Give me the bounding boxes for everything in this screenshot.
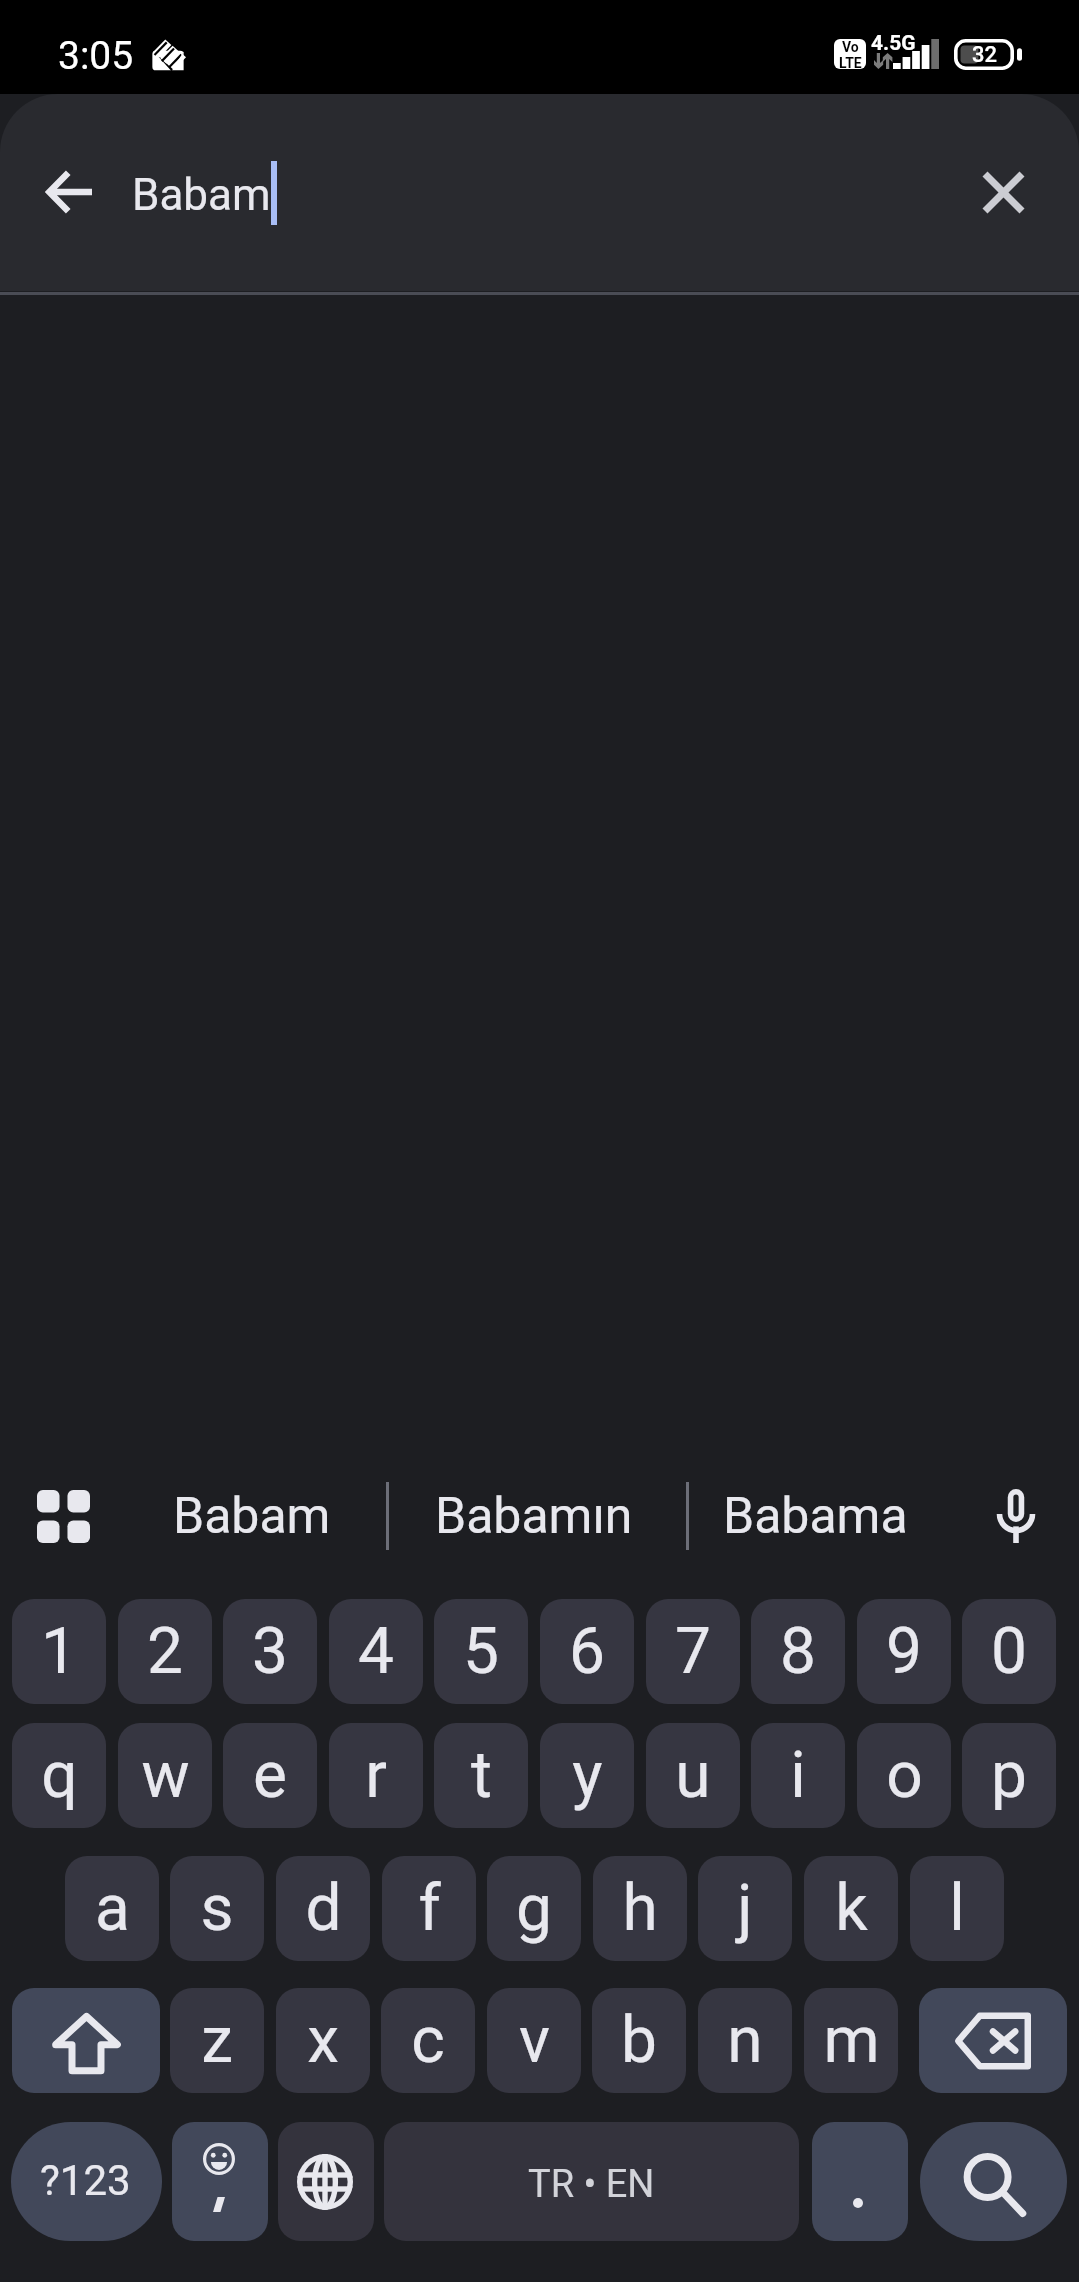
staticText: h [622, 1871, 658, 1946]
button[interactable]: Period [812, 2122, 908, 2241]
button[interactable]: v [487, 1988, 581, 2093]
button[interactable]: z [170, 1988, 264, 2093]
staticText: s [200, 1871, 234, 1946]
staticText: 4 [358, 1614, 394, 1689]
staticText: 1 [41, 1614, 77, 1689]
button[interactable]: Emoji [172, 2122, 268, 2241]
button[interactable]: r [329, 1723, 423, 1828]
staticText: LTE [839, 55, 862, 69]
staticText: 2 [147, 1614, 183, 1689]
button[interactable]: Search [920, 2122, 1067, 2241]
staticText: ?123 [40, 2156, 131, 2205]
button[interactable]: p [962, 1723, 1056, 1828]
staticText: z [201, 2003, 233, 2078]
staticText: 3 [252, 1614, 288, 1689]
staticText: y [572, 1738, 603, 1813]
staticText: a [95, 1871, 130, 1946]
staticText: u [675, 1738, 711, 1813]
staticText: Vo [842, 39, 859, 55]
button[interactable]: m [804, 1988, 898, 2093]
button[interactable]: 2 [118, 1599, 212, 1704]
staticText: Babamın [435, 1487, 633, 1546]
button[interactable]: y [540, 1723, 634, 1828]
staticText: r [365, 1738, 387, 1813]
button[interactable]: 6 [540, 1599, 634, 1704]
staticText: f [418, 1871, 441, 1946]
button[interactable]: w [118, 1723, 212, 1828]
staticText: 8 [780, 1614, 816, 1689]
button[interactable]: Change keyboard language [278, 2122, 374, 2241]
button[interactable]: d [276, 1856, 370, 1961]
staticText: j [737, 1871, 753, 1946]
staticText: k [835, 1871, 868, 1946]
staticText: w [141, 1738, 190, 1813]
button[interactable]: Babama [686, 1452, 944, 1580]
button[interactable]: f [382, 1856, 476, 1961]
button[interactable]: g [487, 1856, 581, 1961]
button[interactable]: Shift [12, 1988, 160, 2093]
button[interactable]: s [170, 1856, 264, 1961]
button[interactable]: 1 [12, 1599, 106, 1704]
button[interactable]: n [698, 1988, 792, 2093]
button[interactable]: j [698, 1856, 792, 1961]
staticText: 5 [463, 1614, 499, 1689]
staticText: m [823, 2003, 880, 2078]
button[interactable]: ?123 [11, 2122, 162, 2241]
button[interactable]: 5 [434, 1599, 528, 1704]
button[interactable]: Keyboard toolbar [15, 1468, 111, 1564]
staticText: t [471, 1738, 492, 1813]
staticText: 3:05 [58, 33, 134, 79]
button[interactable]: TR • EN [384, 2122, 799, 2241]
staticText: l [949, 1871, 965, 1946]
button[interactable]: k [804, 1856, 898, 1961]
button[interactable]: e [223, 1723, 317, 1828]
button[interactable]: 8 [751, 1599, 845, 1704]
staticText: n [727, 2003, 763, 2078]
staticText: c [411, 2003, 445, 2078]
staticText: p [991, 1738, 1027, 1813]
button[interactable]: 7 [646, 1599, 740, 1704]
button[interactable]: Babam [122, 1452, 382, 1580]
staticText: q [41, 1738, 78, 1813]
staticText: Babam [132, 169, 271, 221]
staticText: e [253, 1738, 287, 1813]
staticText: i [790, 1738, 806, 1813]
staticText: 6 [569, 1614, 605, 1689]
button[interactable]: c [381, 1988, 475, 2093]
staticText: TR • EN [528, 2162, 655, 2207]
staticText: 7 [675, 1614, 711, 1689]
button[interactable]: u [646, 1723, 740, 1828]
button[interactable]: h [593, 1856, 687, 1961]
button[interactable]: Voice input [968, 1468, 1064, 1564]
button[interactable]: b [592, 1988, 686, 2093]
button[interactable]: l [910, 1856, 1004, 1961]
staticText: 4.5G [871, 31, 916, 56]
staticText: x [307, 2003, 339, 2078]
button[interactable]: 0 [962, 1599, 1056, 1704]
button[interactable]: o [857, 1723, 951, 1828]
staticText: b [621, 2003, 657, 2078]
staticText: g [516, 1871, 552, 1946]
button[interactable]: 3 [223, 1599, 317, 1704]
staticText: 9 [886, 1614, 922, 1689]
staticText: 32 [972, 42, 998, 68]
staticText: o [886, 1738, 923, 1813]
button[interactable]: 4 [329, 1599, 423, 1704]
button[interactable]: Babamın [386, 1452, 682, 1580]
button[interactable]: Backspace [919, 1988, 1067, 2093]
staticText: v [519, 2003, 550, 2078]
staticText: Babama [723, 1487, 908, 1546]
staticText: 0 [991, 1614, 1027, 1689]
button[interactable]: Back [30, 152, 110, 232]
button[interactable]: i [751, 1723, 845, 1828]
button[interactable]: q [12, 1723, 106, 1828]
staticText: d [305, 1871, 342, 1946]
button[interactable]: x [276, 1988, 370, 2093]
button[interactable]: 9 [857, 1599, 951, 1704]
button[interactable]: t [434, 1723, 528, 1828]
staticText: Babam [173, 1487, 331, 1546]
button[interactable]: Clear search [963, 152, 1043, 232]
button[interactable]: a [65, 1856, 159, 1961]
